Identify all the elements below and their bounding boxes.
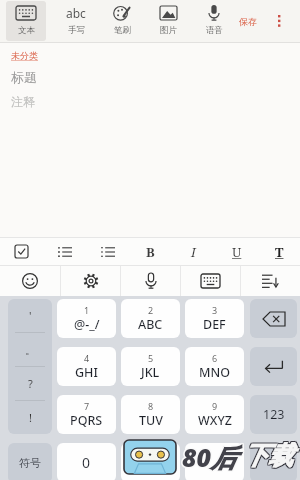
- staticText: 手写: [68, 25, 85, 36]
- button[interactable]: I: [172, 238, 215, 265]
- staticText: TUV: [139, 412, 163, 429]
- button[interactable]: ?: [8, 367, 52, 400]
- staticText: 。: [25, 343, 36, 357]
- button[interactable]: 符号: [8, 443, 52, 480]
- staticText: 保存: [239, 16, 257, 27]
- button[interactable]: B: [129, 238, 172, 265]
- button[interactable]: 5: [121, 347, 180, 386]
- staticText: U: [232, 243, 242, 261]
- button[interactable]: [250, 443, 297, 480]
- staticText: 80后: [183, 440, 238, 474]
- staticText: 未分类: [11, 50, 38, 61]
- button[interactable]: 4: [57, 347, 116, 386]
- staticText: 0: [82, 453, 91, 472]
- button[interactable]: 2: [121, 299, 180, 338]
- button[interactable]: [181, 266, 240, 296]
- staticText: 文本: [18, 25, 35, 36]
- button[interactable]: ': [8, 299, 52, 332]
- staticText: 下载: [244, 441, 294, 472]
- button[interactable]: 。: [8, 333, 52, 366]
- staticText: 8: [148, 400, 154, 412]
- staticText: abc: [66, 5, 86, 21]
- button[interactable]: T: [258, 238, 300, 265]
- staticText: 80后: [181, 441, 236, 475]
- button[interactable]: 笔刷: [102, 1, 142, 41]
- staticText: 下载: [243, 439, 293, 470]
- staticText: ': [29, 308, 32, 323]
- staticText: 80后: [181, 440, 236, 474]
- button[interactable]: [121, 266, 180, 296]
- staticText: 80后: [181, 439, 236, 473]
- staticText: 123: [263, 406, 285, 423]
- button[interactable]: 语音: [194, 1, 234, 41]
- staticText: ABC: [138, 316, 163, 333]
- staticText: T: [275, 243, 284, 261]
- staticText: 80后: [182, 439, 237, 473]
- button[interactable]: !: [8, 401, 52, 434]
- staticText: 图片: [160, 25, 177, 36]
- button[interactable]: U: [215, 238, 258, 265]
- button[interactable]: 6: [185, 347, 244, 386]
- button[interactable]: [86, 238, 129, 265]
- button[interactable]: [0, 266, 60, 296]
- staticText: 2: [148, 304, 154, 316]
- staticText: 80后: [182, 441, 237, 475]
- staticText: I: [191, 243, 196, 261]
- staticText: 5: [148, 352, 154, 364]
- button[interactable]: [121, 443, 180, 480]
- staticText: 标题: [11, 69, 37, 85]
- button[interactable]: abc: [56, 1, 96, 41]
- button[interactable]: [250, 299, 297, 338]
- staticText: GHI: [75, 364, 98, 381]
- staticText: ?: [28, 376, 33, 391]
- staticText: 符号: [19, 456, 41, 470]
- button[interactable]: [61, 266, 120, 296]
- staticText: 6: [212, 352, 218, 364]
- staticText: 9: [212, 400, 218, 412]
- button[interactable]: 7: [57, 395, 116, 434]
- staticText: B: [146, 243, 155, 261]
- staticText: 80后: [183, 441, 238, 475]
- button[interactable]: [241, 266, 300, 296]
- button[interactable]: 图片: [148, 1, 188, 41]
- staticText: 注释: [11, 94, 35, 109]
- staticText: 1: [84, 304, 90, 316]
- button[interactable]: 保存: [236, 13, 260, 30]
- staticText: 下载: [244, 439, 294, 470]
- staticText: @-_/: [74, 316, 100, 333]
- staticText: 3: [212, 304, 218, 316]
- staticText: 下载: [242, 439, 292, 470]
- button[interactable]: 9: [185, 395, 244, 434]
- staticText: 下载: [242, 441, 292, 472]
- button[interactable]: 文本: [6, 1, 46, 41]
- staticText: 80后: [182, 440, 237, 474]
- staticText: 笔刷: [114, 25, 131, 36]
- button[interactable]: [250, 347, 297, 386]
- staticText: 下载: [242, 440, 292, 471]
- staticText: 下载: [243, 440, 293, 471]
- staticText: 下载: [243, 441, 293, 472]
- staticText: PQRS: [70, 412, 103, 429]
- staticText: 下载: [244, 440, 294, 471]
- button[interactable]: 3: [185, 299, 244, 338]
- staticText: DEF: [203, 316, 226, 333]
- staticText: WXYZ: [198, 412, 232, 429]
- button[interactable]: [185, 443, 244, 480]
- button[interactable]: [0, 238, 43, 265]
- button[interactable]: [275, 11, 284, 31]
- staticText: 4: [84, 352, 90, 364]
- staticText: 语音: [206, 25, 223, 36]
- button[interactable]: 8: [121, 395, 180, 434]
- button[interactable]: [43, 238, 86, 265]
- staticText: 80后: [183, 439, 238, 473]
- button[interactable]: ': [8, 299, 52, 434]
- button[interactable]: 123: [250, 395, 297, 434]
- staticText: MNO: [199, 364, 230, 381]
- button[interactable]: 未分类: [11, 50, 38, 61]
- button[interactable]: 0: [57, 443, 116, 480]
- staticText: !: [29, 410, 32, 425]
- staticText: JKL: [141, 364, 160, 381]
- button[interactable]: 1: [57, 299, 116, 338]
- staticText: 7: [84, 400, 90, 412]
